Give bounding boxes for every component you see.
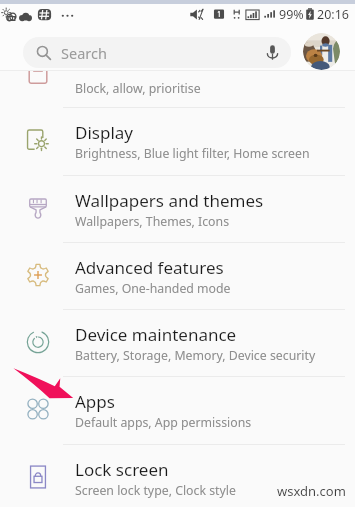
staticText: Brightness, Blue light filter, Home scre… <box>75 145 310 162</box>
staticText: 99% <box>279 6 304 23</box>
staticText: Screen lock type, Clock style <box>75 482 236 499</box>
staticText: Block, allow, prioritise <box>75 80 201 97</box>
staticText: Lock screen <box>75 458 169 481</box>
button[interactable]: Apps <box>0 376 355 443</box>
button[interactable]: Device maintenance <box>0 309 355 376</box>
staticText: Device maintenance <box>75 323 237 346</box>
staticText: Wallpapers, Themes, Icons <box>75 213 230 230</box>
button[interactable]: Profile <box>303 33 340 70</box>
staticText: Display <box>75 121 133 144</box>
button[interactable]: Lock screen <box>0 444 355 507</box>
staticText: Default apps, App permissions <box>75 414 252 431</box>
button[interactable]: Search <box>23 37 291 68</box>
staticText: 20:16 <box>317 6 349 23</box>
staticText: Search <box>61 43 107 63</box>
staticText: Games, One-handed mode <box>75 280 231 297</box>
button[interactable]: Wallpapers and themes <box>0 175 355 242</box>
staticText: Wallpapers and themes <box>75 189 264 212</box>
button[interactable]: Display <box>0 107 355 174</box>
staticText: Apps <box>75 390 115 413</box>
button[interactable]: Advanced features <box>0 242 355 309</box>
staticText: wsxdn.com <box>277 482 346 500</box>
staticText: Battery, Storage, Memory, Device securit… <box>75 347 316 364</box>
staticText: Advanced features <box>75 256 224 279</box>
button[interactable]: Voice search <box>257 37 288 68</box>
